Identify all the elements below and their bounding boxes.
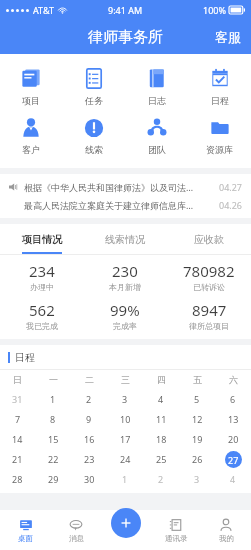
button[interactable]: 17 <box>107 429 143 449</box>
button[interactable]: 4 <box>143 389 179 409</box>
button[interactable]: 28 <box>0 469 35 489</box>
button[interactable]: 31 <box>0 389 35 409</box>
staticText: 最高人民法院立案庭关于建立律师信息库… <box>24 199 219 211</box>
button[interactable]: 1 <box>35 389 71 409</box>
staticText: 24 <box>120 453 131 465</box>
button[interactable]: 项目情况 <box>0 224 83 254</box>
button[interactable]: 14 <box>0 429 35 449</box>
staticText: 本月新增 <box>109 282 141 292</box>
button[interactable]: 团队 <box>125 111 188 160</box>
staticText: 16 <box>84 433 95 445</box>
staticText: 230 <box>112 261 138 281</box>
button[interactable]: 2 <box>143 469 179 489</box>
button[interactable]: Add <box>111 508 141 538</box>
button[interactable]: 应收款 <box>167 224 251 254</box>
button[interactable]: 25 <box>143 449 179 469</box>
staticText: 234 <box>29 261 55 281</box>
staticText: 项目情况 <box>22 233 62 246</box>
button[interactable]: 20 <box>215 429 251 449</box>
button[interactable]: 27 <box>215 449 251 469</box>
button[interactable]: 22 <box>35 449 71 469</box>
button[interactable]: 10 <box>107 409 143 429</box>
staticText: 4 <box>230 473 236 485</box>
staticText: 5 <box>194 393 200 405</box>
staticText: 通讯录 <box>165 534 188 543</box>
staticText: 1 <box>50 393 56 405</box>
staticText: 我的 <box>219 534 234 543</box>
staticText: 五 <box>193 374 202 385</box>
button[interactable]: 2 <box>71 389 107 409</box>
button[interactable]: 线索情况 <box>83 224 167 254</box>
staticText: 团队 <box>148 144 166 155</box>
button[interactable]: 我的 <box>201 510 251 550</box>
staticText: 100% <box>203 4 226 16</box>
button[interactable]: 任务 <box>62 62 125 111</box>
staticText: 日程 <box>211 95 229 106</box>
button[interactable]: 3 <box>179 469 215 489</box>
button[interactable]: 5 <box>179 389 215 409</box>
button[interactable]: 16 <box>71 429 107 449</box>
staticText: 11 <box>156 413 167 425</box>
staticText: 7 <box>15 413 21 425</box>
staticText: 线索 <box>85 144 103 155</box>
staticText: 2 <box>86 393 92 405</box>
staticText: 28 <box>12 473 23 485</box>
staticText: 13 <box>228 413 239 425</box>
staticText: 10 <box>120 413 131 425</box>
button[interactable]: 桌面 <box>0 510 51 550</box>
staticText: 562 <box>29 300 55 320</box>
button[interactable]: 6 <box>215 389 251 409</box>
staticText: 3 <box>122 393 128 405</box>
button[interactable]: 3 <box>107 389 143 409</box>
staticText: 780982 <box>183 261 235 281</box>
staticText: 三 <box>121 374 130 385</box>
button[interactable]: 项目 <box>0 62 62 111</box>
staticText: 9 <box>86 413 92 425</box>
staticText: 四 <box>157 374 166 385</box>
button[interactable]: 9 <box>71 409 107 429</box>
button[interactable]: 12 <box>179 409 215 429</box>
staticText: 一 <box>49 374 58 385</box>
button[interactable]: 30 <box>71 469 107 489</box>
staticText: 客户 <box>22 144 40 155</box>
button[interactable]: 客服 <box>205 23 251 51</box>
staticText: 二 <box>85 374 94 385</box>
staticText: 资源库 <box>206 144 233 155</box>
staticText: 线索情况 <box>105 233 145 246</box>
button[interactable]: 日程 <box>188 62 251 111</box>
button[interactable]: 13 <box>215 409 251 429</box>
staticText: 8 <box>50 413 56 425</box>
button[interactable]: 消息 <box>51 510 101 550</box>
button[interactable]: 19 <box>179 429 215 449</box>
button[interactable]: 通讯录 <box>151 510 201 550</box>
staticText: 26 <box>192 453 203 465</box>
button[interactable]: 资源库 <box>188 111 251 160</box>
button[interactable]: 1 <box>107 469 143 489</box>
button[interactable]: 4 <box>215 469 251 489</box>
button[interactable]: 18 <box>143 429 179 449</box>
button[interactable]: 日志 <box>125 62 188 111</box>
button[interactable]: 24 <box>107 449 143 469</box>
button[interactable]: 26 <box>179 449 215 469</box>
staticText: 桌面 <box>18 534 33 543</box>
staticText: 六 <box>229 374 238 385</box>
staticText: 任务 <box>85 95 103 106</box>
staticText: 我已完成 <box>26 321 58 331</box>
staticText: 18 <box>156 433 167 445</box>
button[interactable]: 线索 <box>62 111 125 160</box>
staticText: 04.26 <box>219 199 243 211</box>
button[interactable]: 7 <box>0 409 35 429</box>
button[interactable]: 29 <box>35 469 71 489</box>
button[interactable]: 23 <box>71 449 107 469</box>
button[interactable]: 客户 <box>0 111 62 160</box>
staticText: 14 <box>12 433 23 445</box>
button[interactable]: 15 <box>35 429 71 449</box>
button[interactable]: 8 <box>35 409 71 429</box>
staticText: 律师事务所 <box>88 28 163 47</box>
button[interactable]: 最高人民法院立案庭关于建立律师信息库… <box>0 196 251 214</box>
staticText: AT&T <box>33 4 54 16</box>
button[interactable]: 根据《中华人民共和国律师法》以及司法… <box>0 178 251 196</box>
button[interactable]: 11 <box>143 409 179 429</box>
button[interactable]: 21 <box>0 449 35 469</box>
staticText: 日程 <box>15 351 35 364</box>
